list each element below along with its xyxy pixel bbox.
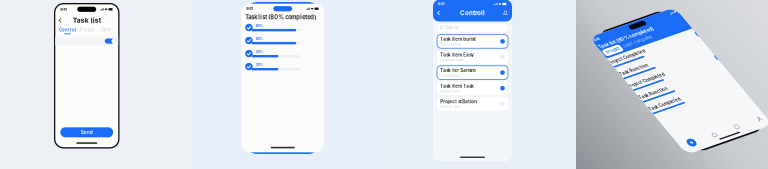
button[interactable]: 20% [245, 63, 320, 70]
button[interactable]: Project stBation [437, 97, 508, 111]
staticText: Controll Task [440, 105, 461, 109]
staticText: Send [81, 129, 93, 135]
button[interactable]: Back [435, 9, 442, 17]
staticText: Project stBation [440, 99, 477, 104]
button[interactable]: Project Completed [560, 28, 681, 42]
button[interactable]: Task item burist [437, 35, 508, 48]
staticText: Completed [603, 19, 624, 24]
staticText: Task item Task [440, 83, 474, 89]
staticText: Task list [73, 16, 101, 24]
button[interactable]: Add [566, 132, 592, 141]
staticText: Task Runction [565, 45, 598, 50]
button[interactable]: Project Completed [560, 56, 681, 71]
button[interactable]: Send [55, 127, 118, 137]
staticText: Project Completed [564, 59, 607, 64]
staticText: Task item Easy [440, 52, 474, 57]
staticText: Task ter Sarisnt [440, 68, 476, 73]
button[interactable]: Profile [645, 134, 672, 138]
button[interactable]: Notifications [501, 9, 509, 17]
staticText: 20% [256, 50, 263, 54]
staticText: Task Completed [565, 88, 602, 93]
staticText: Task list (80% completed) [567, 11, 631, 17]
staticText: Project [570, 19, 584, 24]
button[interactable]: Task item Task [437, 81, 508, 95]
staticText: Other [100, 27, 111, 32]
button[interactable]: Project [77, 27, 96, 34]
staticText: 9:41 [60, 7, 67, 11]
staticText: 80% [256, 24, 263, 28]
button[interactable]: Other [96, 27, 116, 34]
button[interactable]: Task list [433, 24, 512, 32]
staticText: Controll task [440, 89, 460, 93]
button[interactable]: Task Runction [561, 71, 679, 85]
staticText: Sunny online [440, 42, 461, 46]
staticText: Cantinue chart [440, 58, 463, 62]
button[interactable]: Toggle [104, 37, 115, 45]
staticText: Task list (80% completed) [245, 14, 316, 21]
staticText: Control [59, 27, 76, 32]
staticText: 9:41 [246, 6, 253, 11]
button[interactable]: 80% [245, 37, 320, 44]
staticText: 9:41 [438, 2, 445, 6]
staticText: 80% [256, 37, 263, 41]
staticText: Controll [460, 9, 485, 17]
staticText: Task list [445, 25, 459, 30]
button[interactable]: Task Completed [561, 85, 679, 100]
staticText: Project Completed [564, 30, 607, 36]
button[interactable]: Task Runction [561, 42, 679, 56]
staticText: Project [80, 27, 94, 32]
button[interactable]: Control [58, 27, 77, 34]
staticText: 20% [256, 63, 263, 67]
staticText: Task item burist [440, 37, 476, 42]
staticText: Task Runction [565, 74, 598, 79]
button[interactable]: 20% [245, 50, 320, 57]
staticText: Congradsted [440, 73, 460, 77]
staticText: Open [667, 33, 676, 37]
button[interactable]: Task item Easy [437, 50, 508, 64]
button[interactable]: Task ter Sarisnt [437, 66, 508, 79]
button[interactable]: Back [57, 16, 63, 24]
button[interactable]: 80% [245, 24, 320, 31]
